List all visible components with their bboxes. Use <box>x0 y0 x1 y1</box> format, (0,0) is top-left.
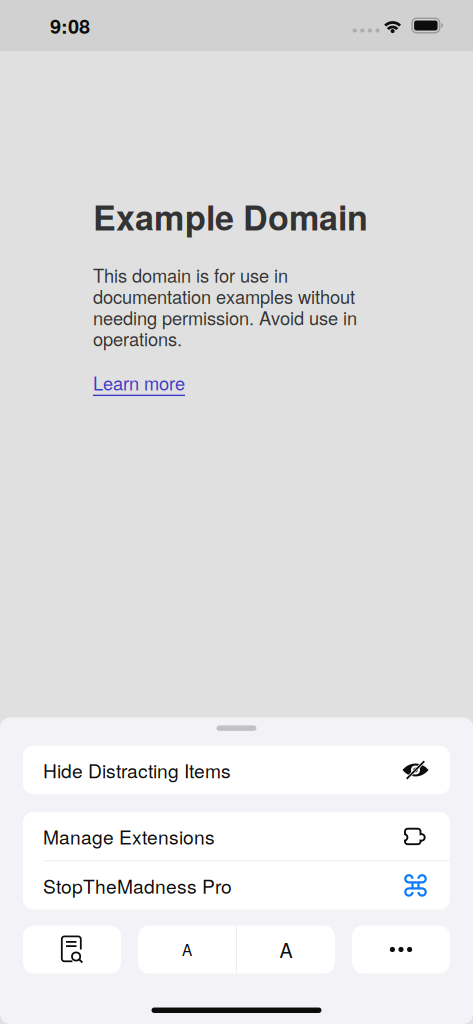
staticText: Learn more <box>93 369 185 396</box>
staticText: This domain is for use in documentation … <box>93 262 357 351</box>
staticText: Hide Distracting Items <box>43 756 231 784</box>
staticText: Manage Extensions <box>43 822 215 850</box>
staticText: A <box>182 938 192 960</box>
button[interactable]: Increase text size <box>237 925 335 973</box>
button[interactable]: Find on Page <box>23 925 121 973</box>
button[interactable]: Decrease text size <box>138 925 236 973</box>
button[interactable]: More <box>352 925 450 973</box>
button[interactable]: Manage Extensions <box>23 812 450 860</box>
button[interactable]: Learn more <box>93 369 185 396</box>
staticText: 9:08 <box>50 11 90 40</box>
staticText: StopTheMadness Pro <box>43 872 232 899</box>
staticText: A <box>279 935 292 964</box>
button[interactable]: StopTheMadness Pro <box>23 861 450 909</box>
staticText: Example Domain <box>93 192 368 241</box>
button[interactable]: Hide Distracting Items <box>23 746 450 794</box>
